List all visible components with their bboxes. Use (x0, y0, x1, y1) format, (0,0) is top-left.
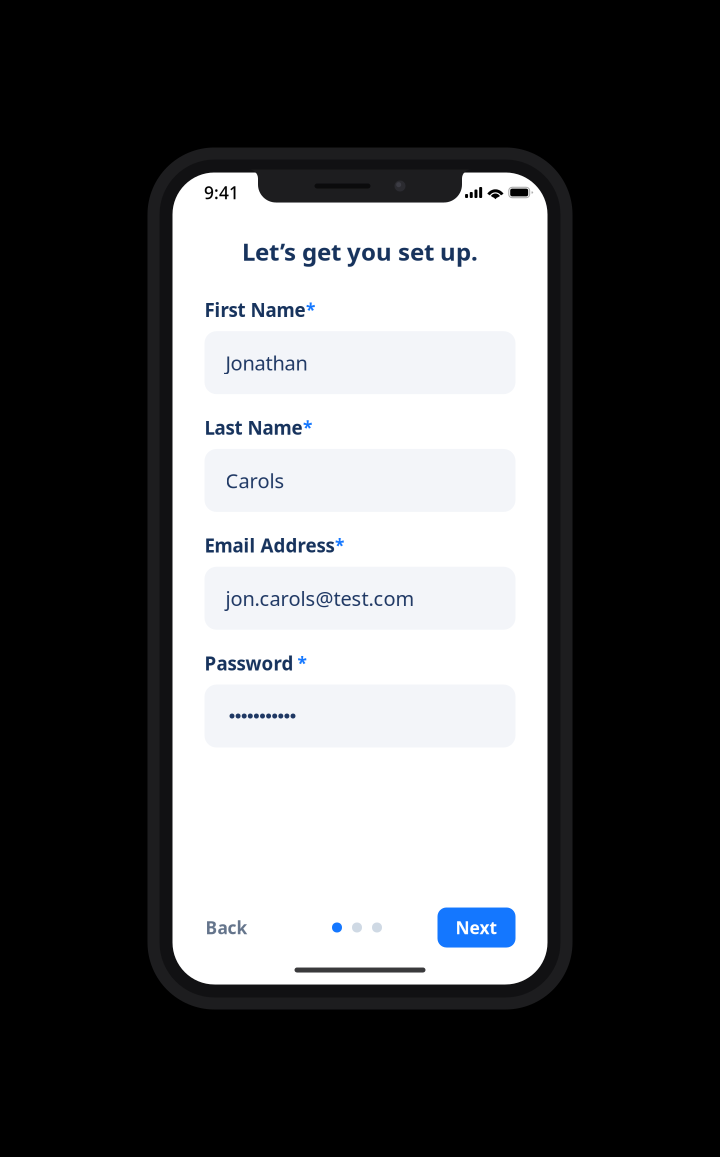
staticText: * (335, 534, 344, 557)
staticText: 9:41 (204, 181, 239, 204)
staticText: jon.carols@test.com (225, 585, 414, 612)
staticText: First Name (204, 297, 305, 322)
staticText: * (297, 652, 306, 675)
staticText: Email Address (204, 533, 334, 558)
staticText: Password (204, 651, 293, 675)
staticText: Let’s get you set up. (242, 235, 478, 267)
button[interactable]: Back (198, 906, 254, 949)
staticText: Carols (225, 467, 284, 494)
staticText: * (306, 298, 315, 321)
staticText: Next (455, 916, 497, 939)
staticText: * (303, 416, 312, 439)
button[interactable]: Next (437, 907, 515, 947)
staticText: Back (205, 916, 247, 939)
staticText: Jonathan (225, 349, 307, 376)
staticText: Last Name (204, 415, 302, 440)
